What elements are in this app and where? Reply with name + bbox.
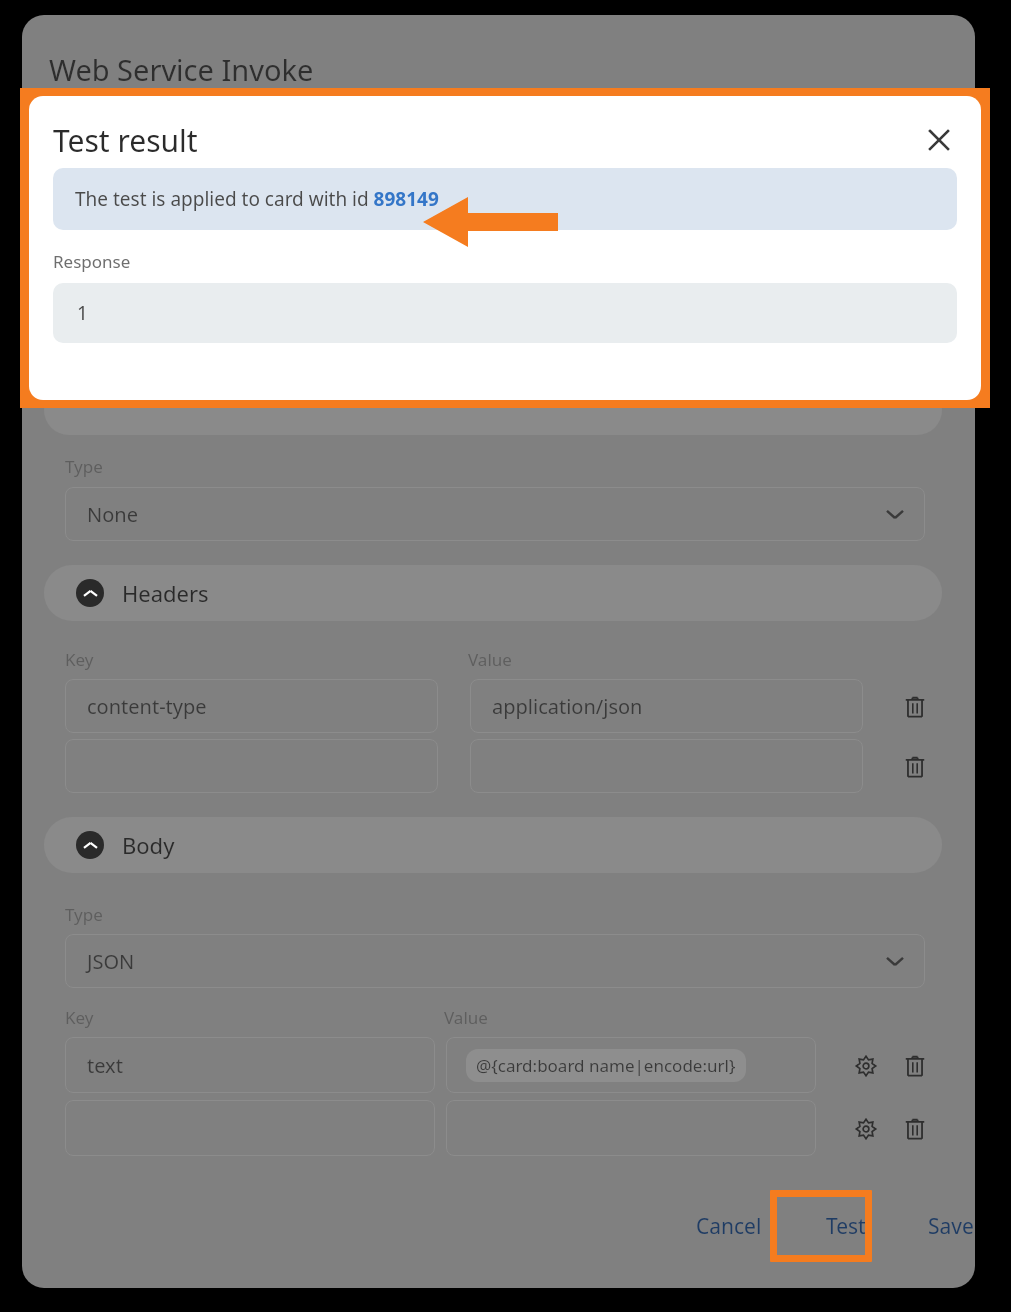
staticText: Cancel	[696, 1212, 762, 1241]
staticText: JSON	[87, 948, 135, 975]
staticText: The test is applied to card with id 8981…	[75, 186, 439, 212]
button[interactable]: @{card:board name|encode:url}	[446, 1037, 816, 1093]
staticText: Response	[53, 250, 131, 273]
staticText: Value	[444, 1006, 488, 1029]
button[interactable]: Delete	[898, 1112, 932, 1146]
button[interactable]: JSON	[65, 934, 925, 988]
staticText: Value	[468, 648, 512, 671]
staticText: Type	[65, 455, 103, 478]
staticText: Test result	[53, 120, 198, 161]
staticText: @{card:board name|encode:url}	[476, 1054, 736, 1077]
button[interactable]: text	[65, 1037, 435, 1093]
staticText: None	[87, 501, 138, 528]
button[interactable]: None	[65, 487, 925, 541]
staticText: Body	[122, 830, 175, 860]
button[interactable]: Settings	[849, 1112, 883, 1146]
button[interactable]: Headers	[44, 565, 942, 621]
button[interactable]: Delete	[898, 1049, 932, 1083]
staticText: Key	[65, 648, 94, 671]
staticText: Save	[928, 1212, 974, 1241]
button[interactable]: content-type	[65, 679, 438, 733]
staticText: Key	[65, 1006, 94, 1029]
button[interactable]: Body	[44, 817, 942, 873]
staticText: Test	[826, 1212, 866, 1241]
button[interactable]: application/json	[470, 679, 863, 733]
button[interactable]: Delete	[898, 750, 932, 784]
staticText: content-type	[87, 693, 207, 720]
staticText: application/json	[492, 693, 643, 720]
button[interactable]: Settings	[849, 1049, 883, 1083]
button[interactable]: Delete	[898, 690, 932, 724]
button[interactable]: Close	[917, 118, 961, 162]
button[interactable]: Save	[914, 1198, 975, 1255]
button[interactable]: Cancel	[682, 1198, 776, 1255]
staticText: Type	[65, 903, 103, 926]
button[interactable]: Test	[812, 1198, 880, 1255]
staticText: Headers	[122, 578, 209, 608]
staticText: text	[87, 1052, 123, 1079]
staticText: Web Service Invoke	[49, 50, 314, 89]
staticText: 1	[77, 300, 88, 326]
